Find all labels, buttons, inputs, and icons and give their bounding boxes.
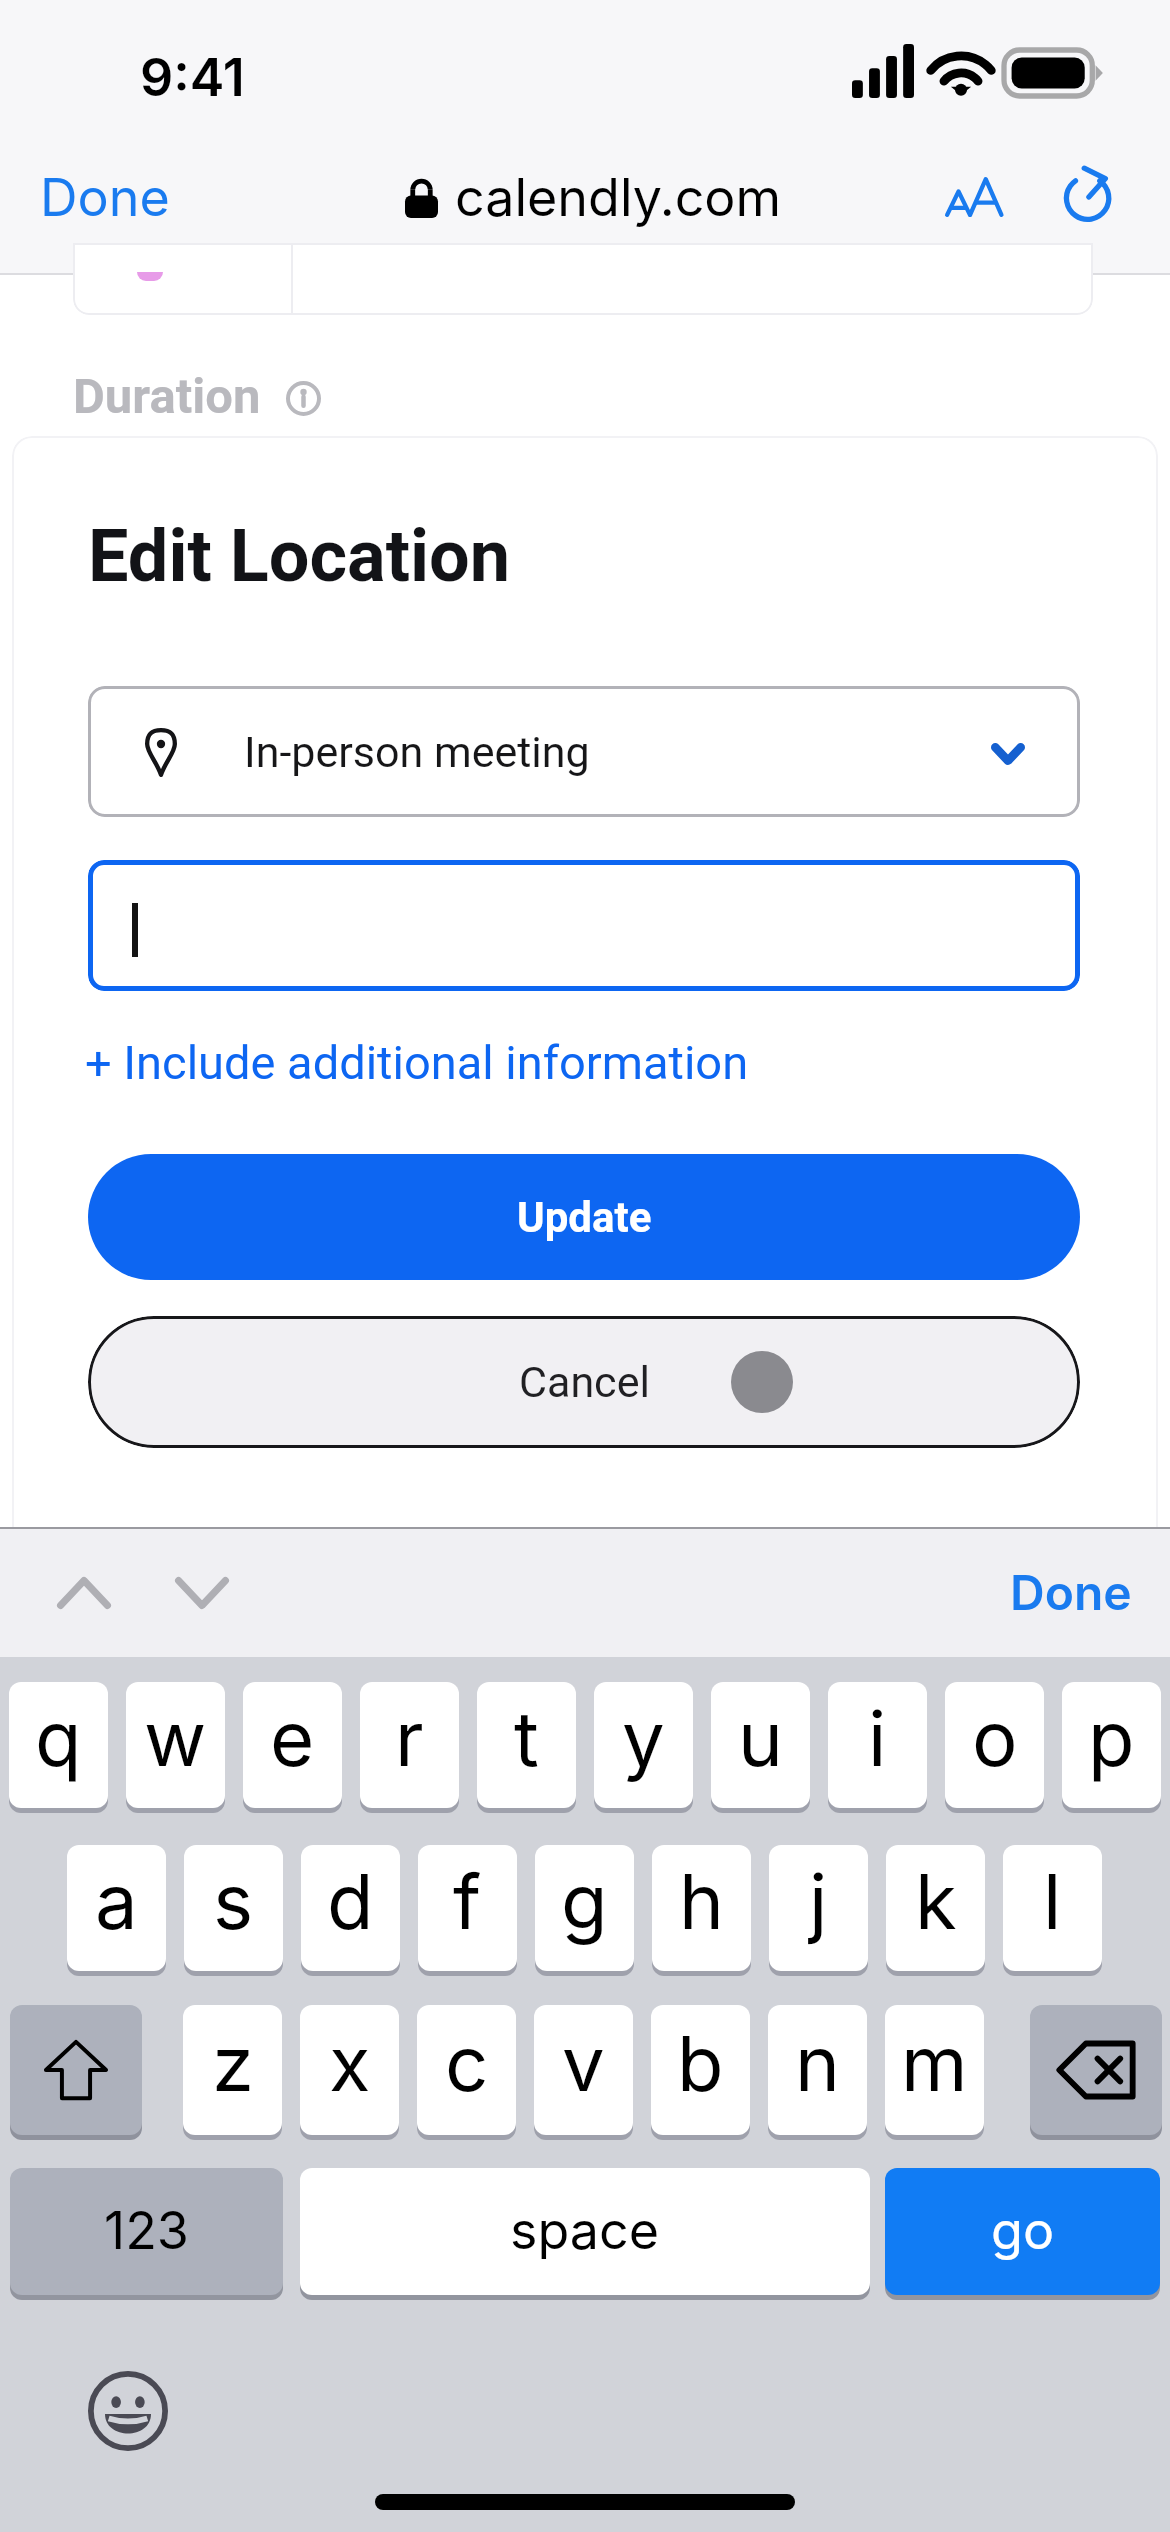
button[interactable]: Done (30, 155, 180, 239)
button[interactable]: k (886, 1845, 985, 1971)
staticText: Duration (73, 368, 261, 425)
button[interactable]: i (828, 1682, 927, 1808)
button[interactable]: v (534, 2005, 633, 2135)
staticText: space (510, 2199, 660, 2262)
button[interactable]: b (651, 2005, 750, 2135)
button[interactable]: e (243, 1682, 342, 1808)
button[interactable]: f (418, 1845, 517, 1971)
staticText: z (212, 2017, 254, 2109)
button[interactable]: Cancel (88, 1316, 1080, 1448)
button[interactable]: Done (1002, 1555, 1140, 1629)
staticText: c (445, 2017, 489, 2109)
staticText: y (622, 1692, 665, 1784)
staticText: 9:41 (140, 46, 245, 109)
button[interactable]: Reload page (1044, 148, 1134, 238)
staticText: o (972, 1692, 1018, 1784)
button[interactable]: Update (88, 1154, 1080, 1280)
button[interactable]: s (184, 1845, 283, 1971)
button[interactable]: o (945, 1682, 1044, 1808)
staticText: k (915, 1855, 957, 1947)
staticText: n (795, 2017, 840, 2109)
button[interactable]: Text size options (928, 152, 1018, 242)
button[interactable]: Backspace (1030, 2005, 1162, 2135)
button[interactable]: g (535, 1845, 634, 1971)
button[interactable]: r (360, 1682, 459, 1808)
button[interactable]: 123 (10, 2168, 283, 2295)
staticText: u (738, 1692, 783, 1784)
button[interactable]: z (183, 2005, 282, 2135)
button[interactable]: j (769, 1845, 868, 1971)
button[interactable]: d (301, 1845, 400, 1971)
button[interactable]: Previous field (37, 1549, 131, 1637)
button[interactable]: a (67, 1845, 166, 1971)
button[interactable]: c (417, 2005, 516, 2135)
staticText: Cancel (519, 1357, 650, 1407)
staticText: d (327, 1855, 374, 1947)
staticText: a (95, 1855, 138, 1947)
staticText: l (1043, 1855, 1062, 1947)
button[interactable]: y (594, 1682, 693, 1808)
staticText: s (213, 1855, 254, 1947)
button[interactable]: + Include additional information (85, 1035, 749, 1090)
button[interactable]: u (711, 1682, 810, 1808)
staticText: In-person meeting (244, 727, 590, 777)
staticText: e (270, 1692, 315, 1784)
staticText: f (453, 1855, 482, 1947)
button[interactable] (88, 860, 1080, 991)
staticText: calendly.com (455, 166, 782, 229)
button[interactable]: m (885, 2005, 984, 2135)
staticText: p (1088, 1692, 1135, 1784)
staticText: w (144, 1692, 207, 1784)
staticText: q (35, 1692, 82, 1784)
staticText: g (561, 1855, 608, 1947)
button[interactable]: l (1003, 1845, 1102, 1971)
staticText: t (514, 1692, 539, 1784)
staticText: Done (40, 166, 170, 229)
button[interactable]: p (1062, 1682, 1161, 1808)
staticText: h (679, 1855, 724, 1947)
button[interactable]: n (768, 2005, 867, 2135)
staticText: Edit Location (88, 514, 511, 598)
button[interactable]: space (300, 2168, 870, 2295)
staticText: j (809, 1855, 828, 1947)
button[interactable]: h (652, 1845, 751, 1971)
staticText: 123 (104, 2199, 189, 2262)
button[interactable]: w (126, 1682, 225, 1808)
staticText: Update (517, 1193, 652, 1242)
staticText: m (901, 2017, 968, 2109)
staticText: r (395, 1692, 424, 1784)
button[interactable]: q (9, 1682, 108, 1808)
staticText: go (991, 2199, 1055, 2262)
button[interactable]: x (300, 2005, 399, 2135)
button[interactable]: Shift (10, 2005, 142, 2135)
staticText: i (868, 1692, 887, 1784)
button[interactable]: In-person meeting (88, 686, 1080, 817)
button[interactable]: Next field (155, 1549, 249, 1637)
staticText: x (329, 2017, 371, 2109)
button[interactable]: go (885, 2168, 1160, 2295)
button[interactable]: Emoji keyboard (78, 2361, 178, 2461)
button[interactable]: t (477, 1682, 576, 1808)
staticText: v (562, 2017, 605, 2109)
staticText: b (677, 2017, 724, 2109)
staticText: Done (1010, 1563, 1132, 1621)
